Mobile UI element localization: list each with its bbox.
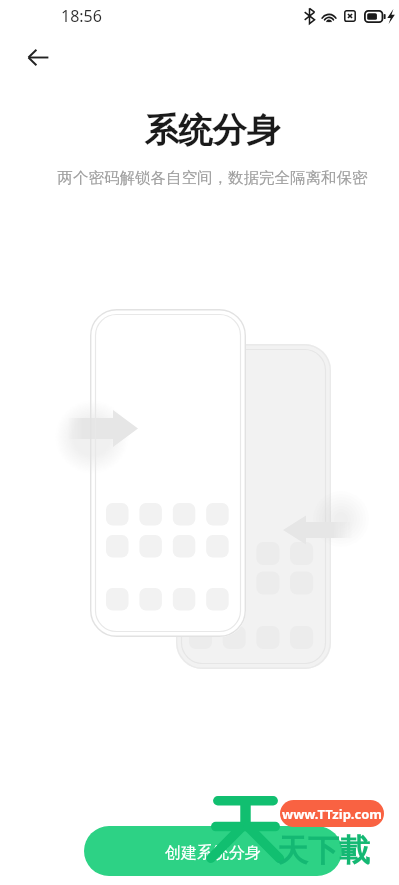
staticText: www.TTzip.com [282,805,383,823]
staticText: 18:56 [61,5,102,27]
button[interactable]: 创建系统分身 [84,826,342,876]
staticText: 两个密码解锁各自空间，数据完全隔离和保密 [13,168,399,188]
staticText: 天下載 [277,831,370,870]
staticText: 创建系统分身 [165,843,261,863]
button[interactable]: Back [18,37,58,77]
staticText: 系统分身 [13,109,399,152]
